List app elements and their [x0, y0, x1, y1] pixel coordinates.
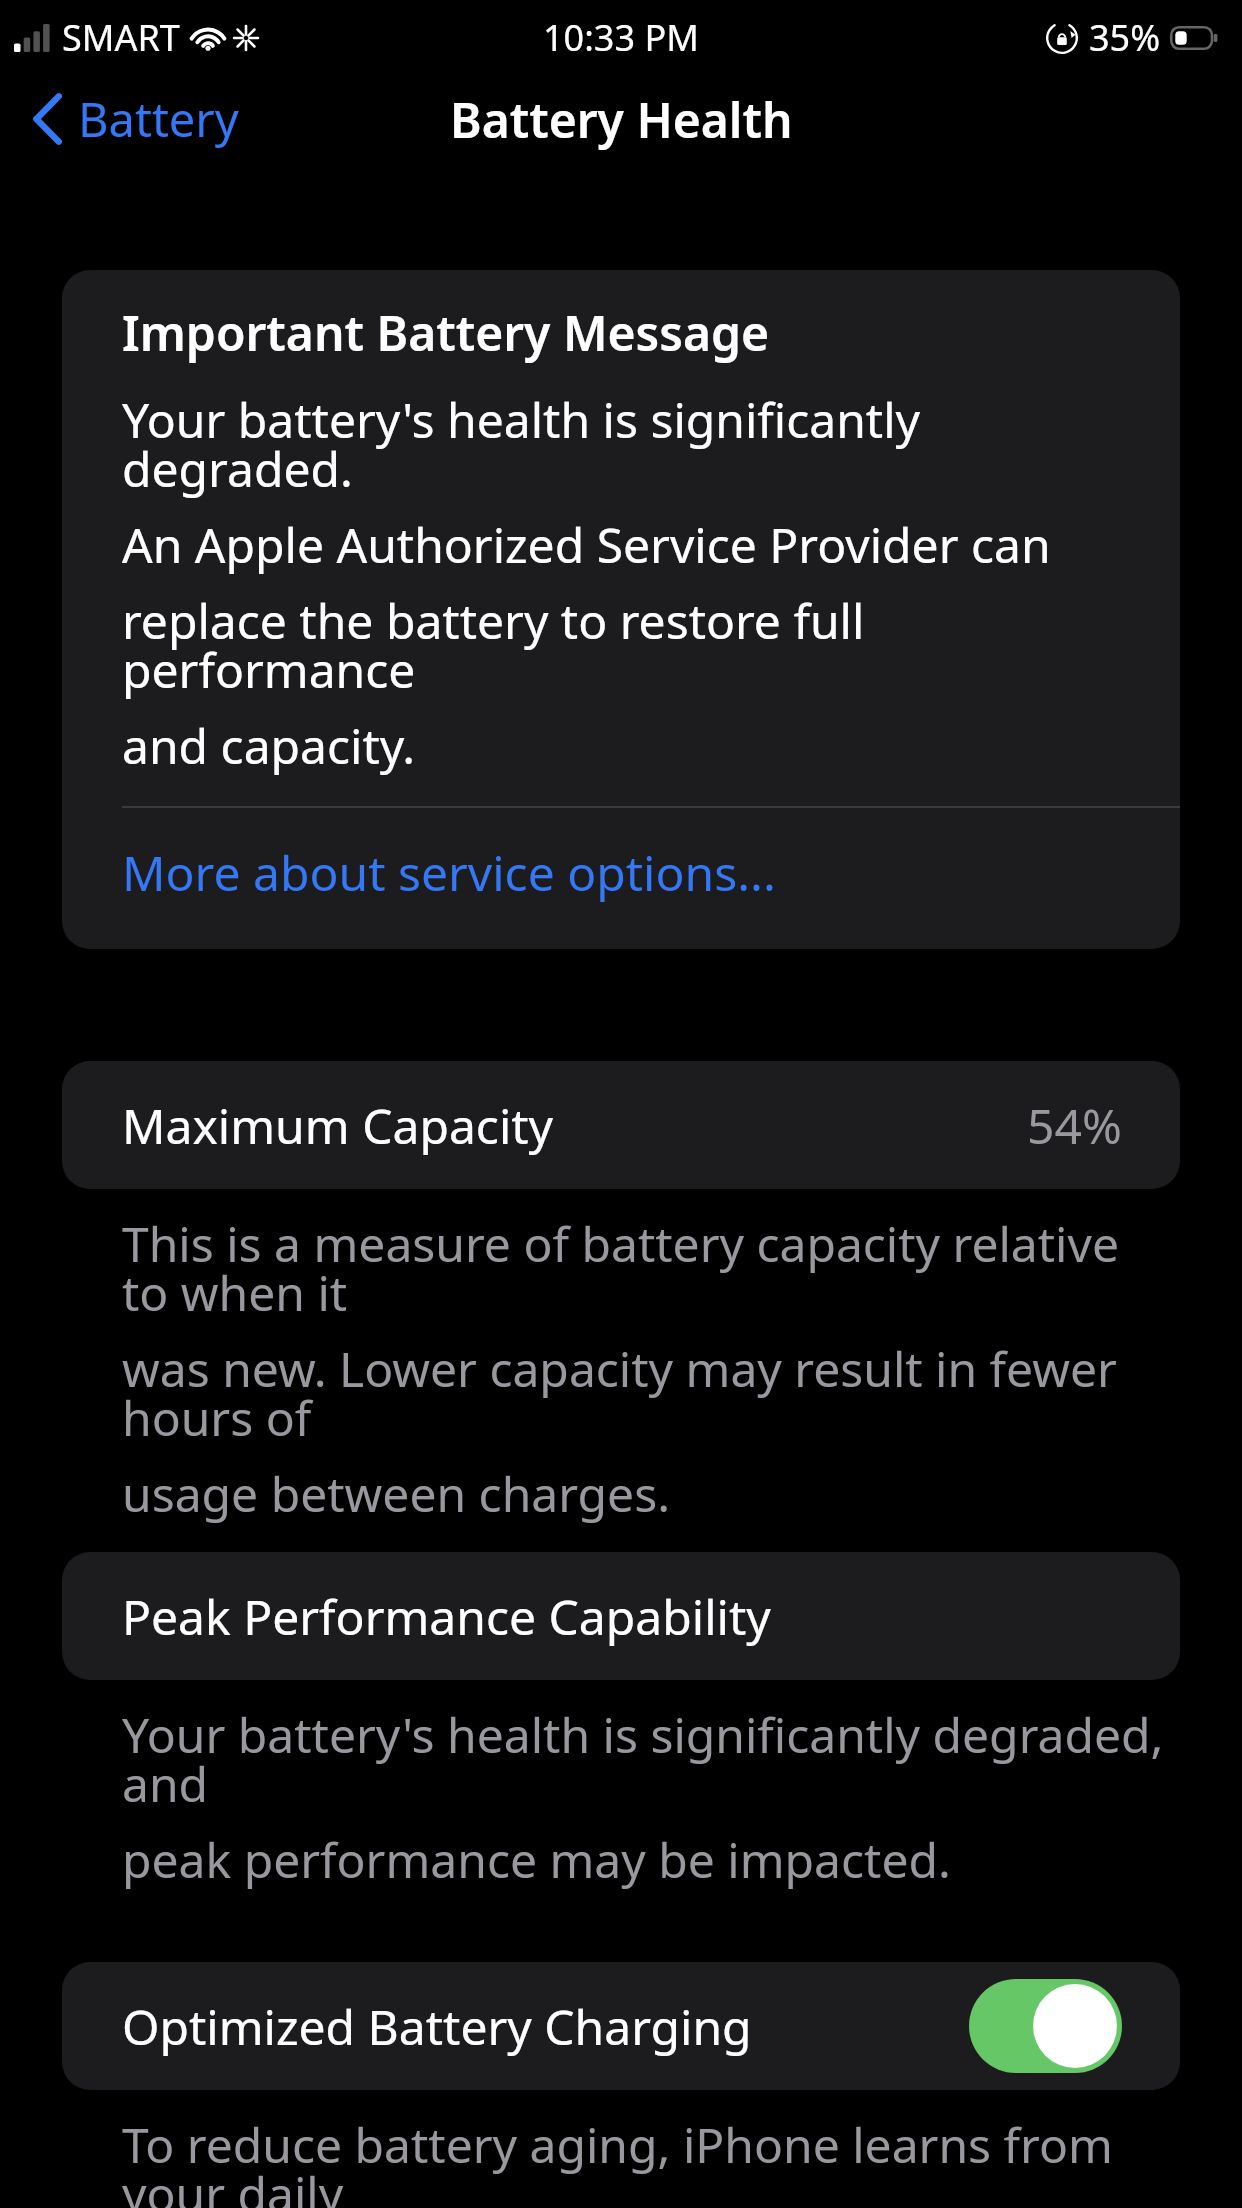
button[interactable]: Peak Performance Capability	[62, 1552, 1180, 1680]
button[interactable]: Maximum Capacity	[62, 1061, 1180, 1189]
staticText: was new. Lower capacity may result in fe…	[122, 1336, 1172, 1450]
staticText: Maximum Capacity	[122, 1093, 554, 1158]
staticText: 54%	[1027, 1093, 1122, 1158]
staticText: usage between charges.	[122, 1461, 671, 1526]
staticText: and capacity.	[122, 713, 416, 778]
button[interactable]: Optimized Battery Charging toggle, on	[969, 1979, 1122, 2073]
staticText: Important Battery Message	[122, 300, 770, 365]
staticText: Your battery's health is significantly d…	[122, 1702, 1172, 1816]
staticText: More about service options...	[122, 840, 776, 905]
staticText: Your battery's health is significantly d…	[122, 387, 1132, 501]
staticText: This is a measure of battery capacity re…	[122, 1211, 1172, 1325]
staticText: Optimized Battery Charging	[122, 1994, 752, 2059]
button[interactable]: Battery	[0, 81, 257, 157]
staticText: An Apple Authorized Service Provider can	[122, 512, 1051, 577]
staticText: SMART	[62, 13, 180, 62]
staticText: 10:33 PM	[543, 13, 699, 62]
staticText: Peak Performance Capability	[122, 1584, 771, 1649]
staticText: 35%	[1089, 13, 1161, 62]
staticText: Battery Health	[450, 87, 793, 152]
staticText: To reduce battery aging, iPhone learns f…	[122, 2112, 1172, 2208]
staticText: peak performance may be impacted.	[122, 1827, 951, 1892]
button[interactable]: More about service options...	[62, 808, 1180, 949]
staticText: replace the battery to restore full perf…	[122, 588, 1132, 702]
staticText: Battery	[78, 87, 239, 151]
